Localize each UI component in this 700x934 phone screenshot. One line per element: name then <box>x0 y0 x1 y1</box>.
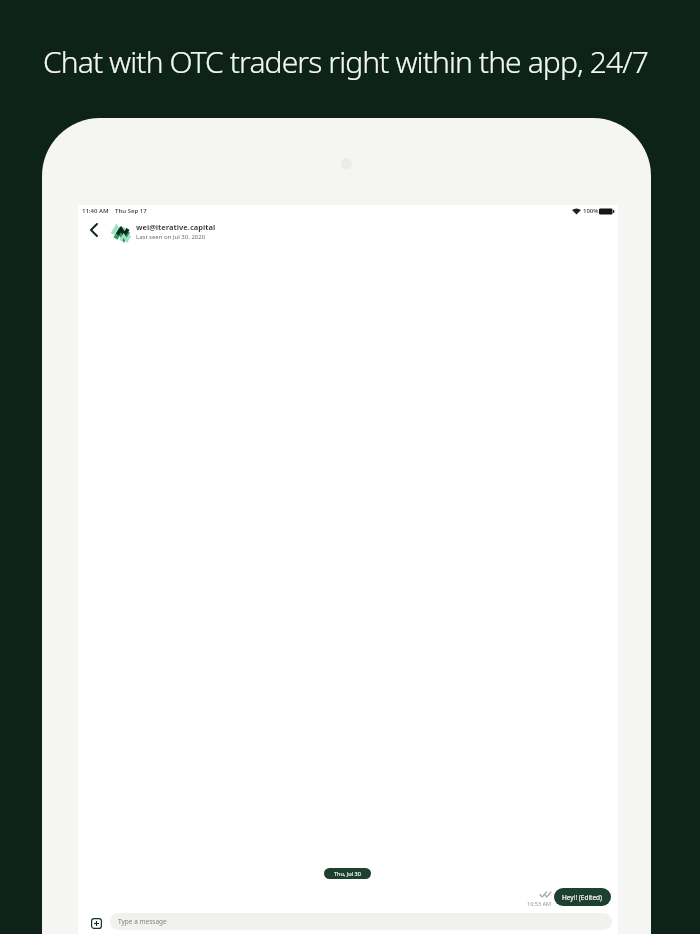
staticText: 11:40 AM <box>82 207 109 215</box>
staticText: Last seen on Jul 30, 2020 <box>136 233 206 241</box>
button[interactable] <box>88 915 104 931</box>
staticText: Chat with OTC traders right within the a… <box>43 41 648 82</box>
button[interactable]: Hey!! (Edited) <box>554 888 611 906</box>
staticText: Thu, Jul 30 <box>334 870 361 877</box>
staticText: 100% <box>583 207 599 215</box>
staticText: Thu Sep 17 <box>115 207 147 215</box>
staticText: wei@iterative.capital <box>136 222 216 232</box>
staticText: Type a message <box>118 917 167 926</box>
staticText: Hey!! (Edited) <box>562 893 603 902</box>
button[interactable] <box>86 221 102 239</box>
staticText: 10:53 AM <box>527 900 551 907</box>
button[interactable]: Type a message <box>110 913 612 930</box>
